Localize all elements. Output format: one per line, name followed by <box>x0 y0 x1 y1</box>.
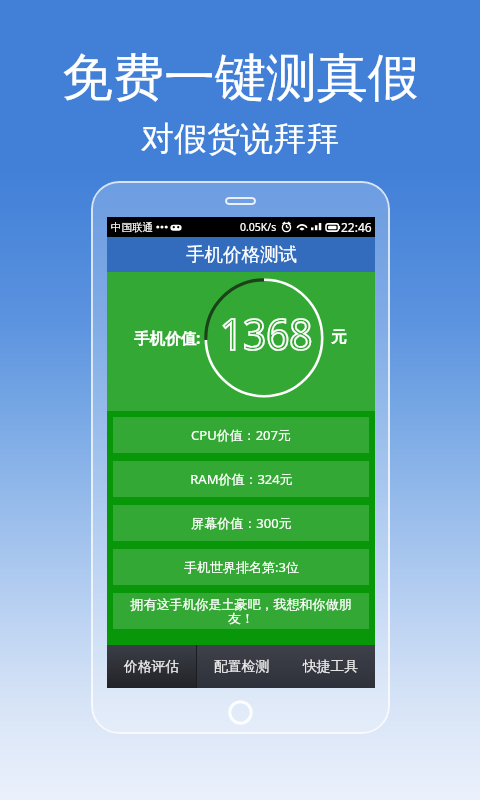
staticText: 手机价值: <box>134 327 201 348</box>
staticText: CPU价值：207元 <box>191 426 291 444</box>
staticText: 配置检测 <box>214 658 270 675</box>
staticText: 0.05K/s <box>240 220 277 234</box>
staticText: 屏幕价值：300元 <box>191 514 292 532</box>
button[interactable]: 屏幕价值：300元 <box>113 505 369 541</box>
staticText: 22:46 <box>341 219 372 235</box>
button[interactable]: 快捷工具 <box>286 645 375 688</box>
staticText: 对假货说拜拜 <box>141 118 339 160</box>
staticText: 1368 <box>220 304 313 363</box>
staticText: 免费一键测真假 <box>62 46 419 110</box>
staticText: 手机价格测试 <box>186 243 297 266</box>
staticText: 价格评估 <box>124 658 180 675</box>
button[interactable]: 配置检测 <box>197 645 286 688</box>
button[interactable]: 价格评估 <box>107 645 197 688</box>
button[interactable]: CPU价值：207元 <box>113 417 369 453</box>
staticText: 中国联通 <box>111 221 153 234</box>
button[interactable]: RAM价值：324元 <box>113 461 369 497</box>
staticText: 拥有这手机你是土豪吧，我想和你做朋友！ <box>130 596 352 627</box>
staticText: 元 <box>331 327 347 347</box>
staticText: RAM价值：324元 <box>190 470 293 488</box>
staticText: 快捷工具 <box>303 658 359 675</box>
button[interactable]: 拥有这手机你是土豪吧，我想和你做朋友！ <box>113 593 369 629</box>
button[interactable]: 手机世界排名第:3位 <box>113 549 369 585</box>
staticText: 手机世界排名第:3位 <box>184 558 299 576</box>
